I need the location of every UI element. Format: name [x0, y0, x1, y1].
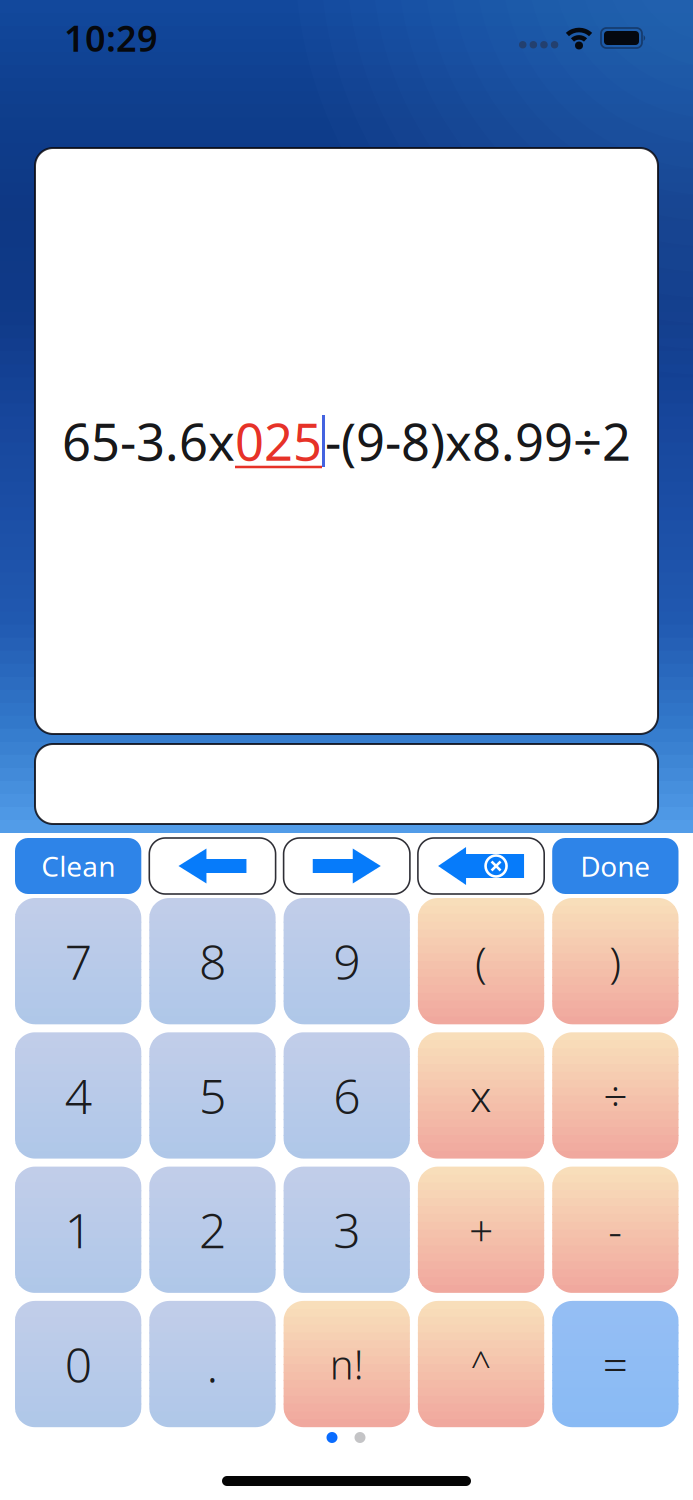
button[interactable]: Done [552, 838, 678, 894]
button[interactable]: 0 [15, 1301, 141, 1427]
button[interactable]: Move cursor right [284, 838, 410, 894]
button[interactable]: - [552, 1167, 678, 1293]
staticText: 0 [65, 1332, 92, 1396]
staticText: ( [475, 933, 487, 989]
button[interactable]: x [418, 1032, 544, 1159]
button[interactable]: + [418, 1167, 544, 1293]
staticText: 025 [235, 407, 322, 475]
staticText: Clean [41, 847, 115, 885]
button[interactable]: ^ [418, 1301, 544, 1427]
button[interactable]: 9 [284, 898, 410, 1024]
staticText: 10:29 [64, 14, 158, 62]
staticText: Done [580, 847, 650, 885]
staticText: ÷ [603, 1067, 627, 1124]
staticText: 8 [199, 929, 226, 993]
staticText: 2 [199, 1198, 226, 1262]
button[interactable]: ) [552, 898, 678, 1024]
staticText: 4 [65, 1064, 92, 1127]
staticText: - [608, 1201, 622, 1258]
staticText: 65-3.6x [62, 407, 235, 475]
staticText: 7 [65, 929, 92, 993]
staticText: . [206, 1332, 218, 1396]
button[interactable]: 4 [15, 1032, 141, 1159]
button[interactable]: 6 [284, 1032, 410, 1159]
button[interactable]: . [149, 1301, 276, 1427]
button[interactable]: ÷ [552, 1032, 678, 1159]
button[interactable]: ( [418, 898, 544, 1024]
button[interactable]: Move cursor left [149, 838, 276, 894]
staticText: 9 [333, 929, 360, 993]
staticText: x [470, 1067, 492, 1124]
button[interactable]: Clean [15, 838, 141, 894]
staticText: ) [609, 933, 621, 989]
staticText: = [603, 1335, 628, 1393]
staticText: + [469, 1201, 493, 1258]
button[interactable]: n! [284, 1301, 410, 1427]
button[interactable]: 2 [149, 1167, 276, 1293]
button[interactable]: 5 [149, 1032, 276, 1159]
button[interactable]: Page 1 of 2 [326, 1432, 365, 1443]
button[interactable]: 7 [15, 898, 141, 1024]
button[interactable]: = [552, 1301, 678, 1427]
button[interactable]: Delete [418, 838, 544, 894]
staticText: -(9-8)x8.99÷2 [325, 407, 631, 475]
staticText: 5 [199, 1064, 226, 1127]
button[interactable]: 8 [149, 898, 276, 1024]
staticText: 6 [333, 1064, 360, 1127]
button[interactable]: 3 [284, 1167, 410, 1293]
staticText: 3 [333, 1198, 360, 1262]
staticText: ^ [471, 1340, 492, 1388]
staticText: n! [330, 1337, 364, 1391]
button[interactable]: 1 [15, 1167, 141, 1293]
staticText: 1 [65, 1198, 92, 1262]
